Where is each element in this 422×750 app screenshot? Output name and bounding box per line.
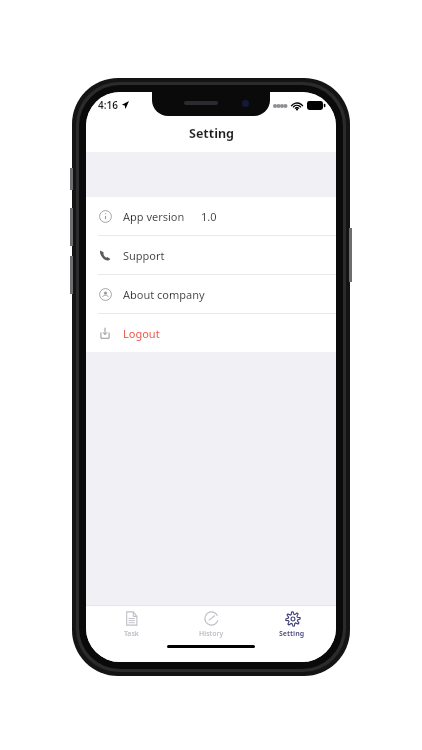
button[interactable]: Logout — [86, 314, 336, 352]
staticText: Setting — [279, 629, 305, 639]
button[interactable]: History — [175, 606, 247, 642]
staticText: 1.0 — [201, 209, 217, 224]
staticText: Setting — [189, 125, 234, 142]
button[interactable]: Support — [86, 236, 336, 275]
staticText: 4:16 — [98, 98, 118, 112]
button[interactable]: About company — [86, 275, 336, 314]
staticText: History — [199, 629, 224, 639]
staticText: Support — [123, 248, 165, 263]
staticText: Logout — [123, 326, 160, 341]
staticText: About company — [123, 287, 205, 302]
button[interactable]: Task — [95, 606, 167, 642]
button[interactable]: Setting — [256, 606, 328, 642]
button[interactable]: App version — [86, 197, 336, 236]
staticText: Task — [124, 629, 139, 639]
staticText: App version — [123, 209, 185, 224]
